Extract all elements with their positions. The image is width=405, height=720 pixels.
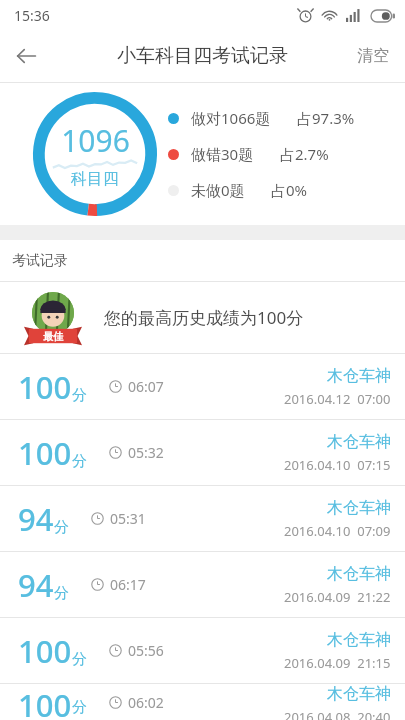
staticText: 06:02 [128, 693, 164, 712]
staticText: 木仓车神 [327, 366, 391, 386]
staticText: 94 [18, 498, 54, 540]
staticText: 100 [18, 366, 72, 408]
staticText: 2016.04.10 07:15 [284, 456, 391, 474]
staticText: 94 [18, 564, 54, 606]
button[interactable]: 94 [0, 552, 405, 617]
staticText: 15:36 [14, 6, 50, 25]
staticText: 您的最高历史成绩为100分 [104, 306, 304, 329]
staticText: 小车科目四考试记录 [117, 44, 288, 68]
staticText: 1096 [61, 120, 130, 161]
staticText: 分 [72, 698, 87, 717]
button[interactable]: Back [0, 30, 52, 82]
staticText: 100 [18, 630, 72, 672]
staticText: 清空 [357, 46, 389, 66]
staticText: 分 [72, 650, 87, 669]
staticText: 最佳 [43, 330, 63, 343]
staticText: 05:56 [128, 641, 164, 660]
staticText: 木仓车神 [327, 630, 391, 650]
staticText: 未做0题 [191, 180, 245, 200]
staticText: 木仓车神 [327, 432, 391, 452]
staticText: 占2.7% [280, 144, 329, 164]
button[interactable]: 清空 [341, 34, 405, 78]
button[interactable]: 100 [0, 618, 405, 683]
staticText: 05:31 [110, 509, 146, 528]
staticText: 分 [72, 452, 87, 471]
staticText: 占0% [271, 180, 308, 200]
button[interactable]: 94 [0, 486, 405, 551]
staticText: 06:07 [128, 377, 164, 396]
staticText: 100 [18, 684, 72, 720]
staticText: 科目四 [71, 169, 119, 189]
staticText: 05:32 [128, 443, 164, 462]
staticText: 占97.3% [297, 108, 355, 128]
staticText: 分 [54, 584, 69, 603]
staticText: 分 [72, 386, 87, 405]
button[interactable]: 最佳 [0, 282, 405, 353]
staticText: 100 [18, 432, 72, 474]
staticText: 2016.04.09 21:15 [284, 654, 391, 672]
staticText: 木仓车神 [327, 564, 391, 584]
staticText: 做对1066题 [191, 108, 271, 128]
staticText: 做错30题 [191, 144, 254, 164]
staticText: 2016.04.08 20:40 [284, 708, 391, 720]
staticText: 2016.04.10 07:09 [284, 522, 391, 540]
staticText: 2016.04.12 07:00 [284, 390, 391, 408]
staticText: 木仓车神 [327, 498, 391, 518]
button[interactable]: 100 [0, 420, 405, 485]
staticText: 2016.04.09 21:22 [284, 588, 391, 606]
button[interactable]: 100 [0, 354, 405, 419]
button[interactable]: 100 [0, 684, 405, 720]
staticText: 木仓车神 [327, 684, 391, 704]
staticText: 分 [54, 518, 69, 537]
staticText: 06:17 [110, 575, 146, 594]
staticText: 考试记录 [12, 252, 68, 270]
